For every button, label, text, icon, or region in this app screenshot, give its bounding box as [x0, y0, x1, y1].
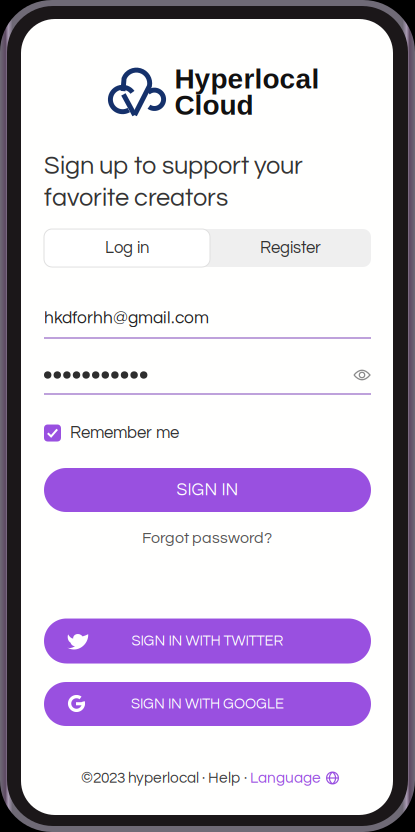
staticText: Language: [250, 770, 321, 786]
button[interactable]: SIGN IN WITH GOOGLE: [44, 682, 371, 726]
staticText: SIGN IN WITH TWITTER: [131, 633, 283, 648]
button[interactable]: SIGN IN: [44, 468, 371, 512]
button[interactable]: Forgot password?: [127, 527, 287, 549]
button[interactable]: Log in: [44, 229, 210, 267]
button[interactable]: Language: [250, 770, 339, 786]
staticText: Register: [260, 239, 321, 257]
staticText: favorite creators: [44, 185, 228, 211]
staticText: Sign up to support your: [44, 153, 303, 179]
staticText: Log in: [105, 239, 149, 257]
staticText: SIGN IN: [176, 481, 238, 499]
staticText: SIGN IN WITH GOOGLE: [131, 696, 284, 711]
button[interactable]: SIGN IN WITH TWITTER: [44, 618, 371, 663]
staticText: Remember me: [70, 424, 179, 442]
staticText: hkdforhh@gmail.com: [44, 309, 209, 327]
staticText: Hyperlocal: [174, 63, 319, 94]
button[interactable]: Register: [210, 229, 371, 267]
staticText: ©2023 hyperlocal · Help ·: [81, 770, 250, 786]
button[interactable]: Remember me: [44, 421, 371, 445]
staticText: Forgot password?: [142, 530, 272, 546]
staticText: Cloud: [174, 89, 253, 121]
